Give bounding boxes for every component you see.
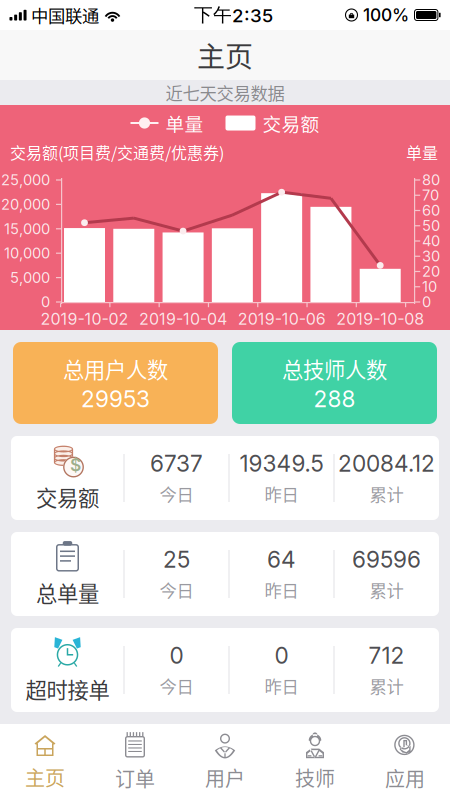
staticText: 10,000 bbox=[4, 244, 50, 262]
staticText: 0 bbox=[274, 642, 288, 669]
staticText: 总用户人数 bbox=[63, 353, 168, 384]
button[interactable]: 应用 bbox=[360, 725, 450, 799]
button[interactable]: 用户 bbox=[180, 725, 270, 799]
staticText: 交易额 bbox=[262, 109, 319, 136]
staticText: 超时接单 bbox=[25, 674, 109, 704]
staticText: 今日 bbox=[159, 673, 193, 698]
staticText: 昨日 bbox=[264, 673, 298, 698]
staticText: 20 bbox=[422, 263, 440, 280]
staticText: 交易额 bbox=[36, 482, 99, 512]
staticText: 64 bbox=[267, 546, 296, 573]
button[interactable]: 超时接单 bbox=[11, 628, 439, 712]
staticText: 订单 bbox=[115, 763, 155, 792]
button[interactable]: 订单 bbox=[90, 725, 180, 799]
staticText: 累计 bbox=[369, 481, 403, 506]
staticText: 主页 bbox=[197, 35, 253, 75]
staticText: 30 bbox=[422, 247, 440, 265]
staticText: 0 bbox=[41, 293, 50, 311]
staticText: 昨日 bbox=[264, 577, 298, 602]
staticText: 80 bbox=[422, 171, 440, 189]
staticText: 中国联通 bbox=[31, 2, 99, 28]
staticText: 100% bbox=[363, 4, 409, 25]
staticText: 20,000 bbox=[1, 195, 50, 213]
button[interactable]: $ bbox=[11, 436, 439, 520]
staticText: 10 bbox=[422, 278, 437, 296]
button[interactable]: 总技师人数 bbox=[232, 342, 437, 424]
staticText: 累计 bbox=[369, 673, 403, 698]
staticText: 今日 bbox=[159, 577, 193, 602]
staticText: 总技师人数 bbox=[282, 353, 387, 384]
staticText: 50 bbox=[422, 217, 440, 235]
staticText: 25,000 bbox=[1, 171, 50, 189]
staticText: $ bbox=[70, 455, 81, 476]
staticText: 用户 bbox=[205, 763, 245, 792]
staticText: 60 bbox=[422, 202, 440, 219]
staticText: 19349.5 bbox=[239, 450, 323, 477]
staticText: 今日 bbox=[159, 481, 193, 506]
button[interactable]: 总单量 bbox=[11, 532, 439, 616]
staticText: 交易额(项目费/交通费/优惠券) bbox=[10, 140, 224, 164]
button[interactable]: 总用户人数 bbox=[13, 342, 218, 424]
button[interactable]: 技师 bbox=[270, 725, 360, 799]
staticText: 0 bbox=[169, 642, 183, 669]
staticText: 主页 bbox=[25, 762, 65, 791]
staticText: 2019-10-06 bbox=[238, 309, 326, 329]
staticText: 20084.12 bbox=[338, 450, 435, 477]
staticText: 近七天交易数据 bbox=[165, 80, 284, 105]
staticText: 5,000 bbox=[10, 269, 50, 286]
staticText: 2019-10-08 bbox=[336, 309, 424, 329]
staticText: 40 bbox=[422, 232, 440, 250]
staticText: 总单量 bbox=[36, 577, 99, 608]
staticText: 288 bbox=[313, 385, 355, 413]
staticText: 6737 bbox=[150, 450, 203, 477]
staticText: 69596 bbox=[352, 546, 421, 573]
staticText: 25 bbox=[163, 546, 190, 573]
staticText: 0 bbox=[422, 293, 431, 311]
staticText: 单量 bbox=[165, 109, 203, 136]
staticText: 昨日 bbox=[264, 481, 298, 506]
button[interactable]: 主页 bbox=[0, 725, 90, 799]
staticText: 15,000 bbox=[4, 220, 50, 238]
staticText: 应用 bbox=[385, 763, 425, 792]
staticText: 累计 bbox=[369, 577, 403, 602]
staticText: 技师 bbox=[295, 763, 335, 792]
staticText: 2019-10-04 bbox=[139, 309, 227, 329]
staticText: 712 bbox=[368, 642, 404, 669]
staticText: 单量 bbox=[406, 140, 438, 164]
staticText: 29953 bbox=[81, 385, 150, 413]
staticText: 下午2:35 bbox=[194, 3, 273, 27]
staticText: 2019-10-02 bbox=[40, 309, 128, 329]
staticText: 70 bbox=[422, 186, 439, 204]
